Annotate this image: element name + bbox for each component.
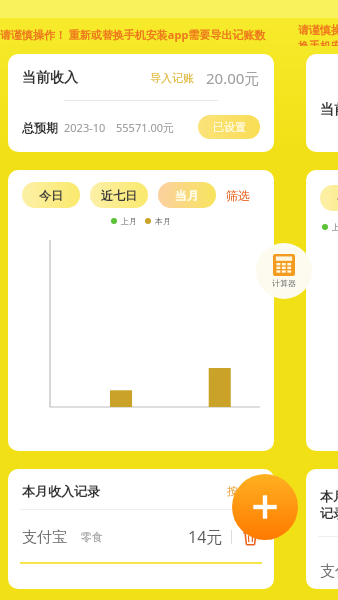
staticText: 支付宝 [22, 528, 67, 547]
staticText: 今日 [39, 188, 63, 203]
staticText: 总预期 [22, 120, 58, 135]
staticText: 近七日 [101, 188, 137, 203]
staticText: 14元 [188, 526, 223, 548]
staticText: 2023-10 [64, 120, 106, 135]
button[interactable]: 导入记账 [150, 71, 194, 85]
button[interactable]: 当前收入 [306, 54, 338, 152]
staticText: 当月 [175, 188, 199, 203]
button[interactable]: 今日 [320, 185, 338, 211]
button[interactable]: 计算器 [256, 243, 312, 299]
staticText: 本月 [155, 216, 171, 226]
staticText: 零食 [81, 530, 103, 544]
button[interactable]: 删除 [240, 527, 260, 547]
button[interactable]: 支付宝 [22, 526, 260, 548]
button[interactable]: 支付宝 [320, 553, 338, 589]
button[interactable]: 已设置 [198, 115, 260, 139]
staticText: 本月收入记录 [22, 483, 100, 499]
button[interactable]: 添加记账 [232, 474, 298, 540]
button[interactable]: 当前收入 [8, 54, 274, 152]
staticText: 今日 [337, 191, 338, 206]
staticText: 当前收入 [320, 101, 338, 119]
staticText: 当前收入 [22, 69, 78, 87]
staticText: 20.00元 [206, 68, 260, 88]
staticText: 请谨慎操作！ 重新或替换手机安装app需要导出记账数 [0, 27, 266, 42]
staticText: 本月收入记录 [320, 488, 338, 522]
button[interactable]: 按日期 [227, 484, 260, 498]
staticText: 已设置 [213, 120, 246, 134]
staticText: 上月 [332, 222, 338, 232]
staticText: 请谨慎操作！ 重新或替换手机安装app需要导出记账数 [298, 22, 338, 46]
staticText: 上月 [121, 216, 137, 226]
button[interactable]: 当月 [158, 182, 216, 208]
staticText: 支付宝 [320, 562, 338, 581]
staticText: 55571.00元 [116, 120, 174, 135]
button[interactable]: 近七日 [90, 182, 148, 208]
button[interactable]: 筛选 [226, 188, 250, 203]
button[interactable]: 今日 [22, 182, 80, 208]
staticText: 计算器 [272, 278, 296, 288]
